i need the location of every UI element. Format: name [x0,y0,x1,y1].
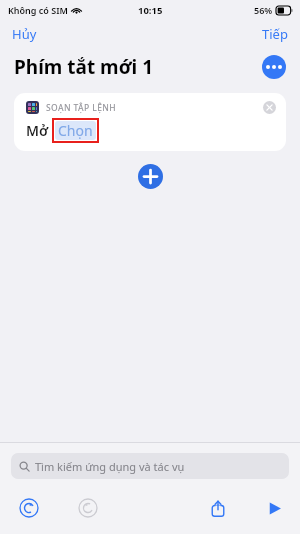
staticText: 10:15 [138,4,163,17]
staticText: Phím tắt mới 1 [14,54,154,80]
button[interactable]: Run shortcut [259,493,289,523]
staticText: Chọn [58,121,93,140]
button[interactable]: More options [262,55,286,79]
button[interactable]: Hủy [0,20,49,48]
button[interactable]: Add action [138,164,163,189]
staticText: Hủy [12,25,37,43]
staticText: Không có SIM [8,4,68,16]
button[interactable]: SOẠN TẬP LỆNH [14,93,286,151]
staticText: Tiếp [262,25,288,43]
button[interactable]: Undo [14,493,44,523]
button[interactable]: Redo [73,493,103,523]
staticText: SOẠN TẬP LỆNH [46,102,117,114]
staticText: 56% [254,4,273,16]
staticText: Tìm kiếm ứng dụng và tác vụ [35,459,185,474]
button[interactable]: Tiếp [250,20,300,48]
staticText: Mở [26,121,49,140]
button[interactable]: Share [203,493,233,523]
button[interactable]: Remove action [263,101,276,114]
button[interactable]: Chọn [55,121,96,140]
button[interactable]: Tìm kiếm ứng dụng và tác vụ [11,453,289,479]
